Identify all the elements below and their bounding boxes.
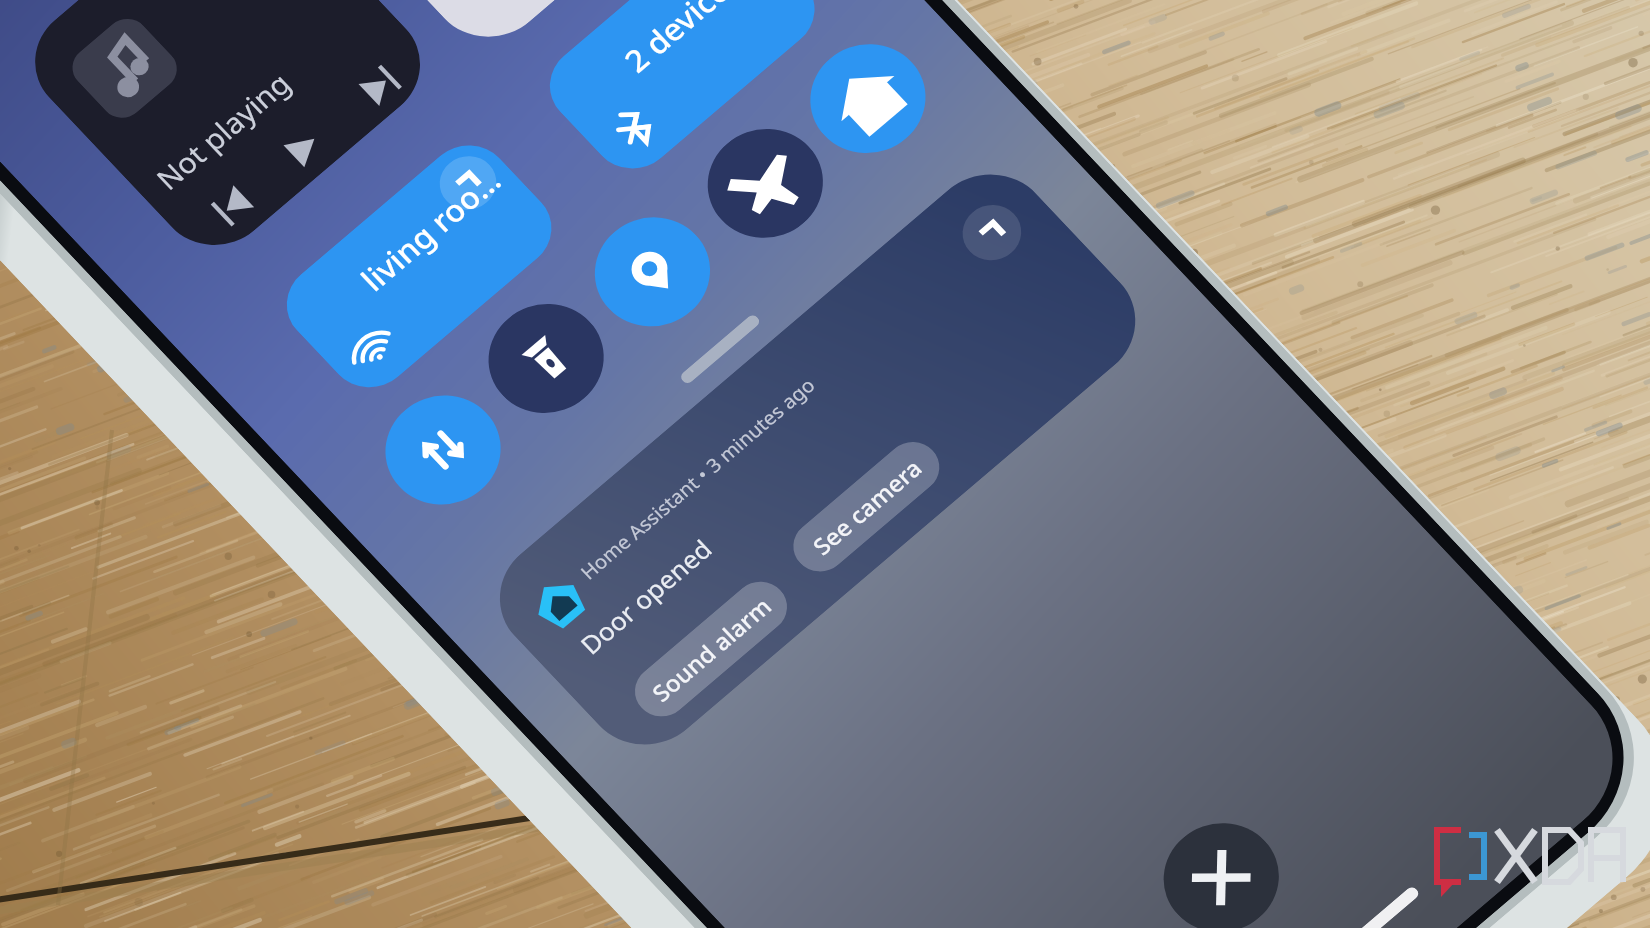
button[interactable]: Airplane mode <box>672 94 858 273</box>
button[interactable]: Expand notification <box>944 187 1039 278</box>
button[interactable]: Sound alarm <box>605 565 817 733</box>
button[interactable]: Flashlight <box>453 269 639 448</box>
staticText: Sound alarm <box>629 587 793 712</box>
staticText: 2 devices <box>600 0 765 86</box>
button[interactable]: Expand internet tile <box>422 139 514 227</box>
staticText: Door opened <box>556 527 736 665</box>
button[interactable]: Add <box>1128 788 1314 928</box>
button[interactable]: 2 devices <box>505 0 860 201</box>
button[interactable] <box>252 0 753 94</box>
button[interactable]: Home <box>775 9 961 188</box>
button[interactable]: Not playing <box>0 0 476 301</box>
button[interactable]: living roo… <box>241 113 597 420</box>
button[interactable]: See camera <box>764 425 969 588</box>
staticText: Not playing <box>130 59 316 203</box>
button[interactable]: Location <box>559 182 746 361</box>
button[interactable]: Auto-rotate <box>350 360 536 540</box>
staticText: living roo… <box>334 155 527 305</box>
staticText: See camera <box>791 448 943 565</box>
button[interactable]: Home Assistant • 3 minutes ago <box>402 122 1233 797</box>
staticText: Home Assistant • 3 minutes ago <box>543 369 852 588</box>
